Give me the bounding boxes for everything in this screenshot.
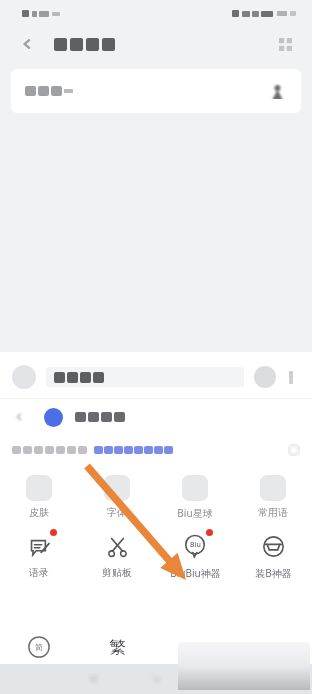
staticText: 皮肤 [29, 506, 49, 519]
button[interactable]: 皮肤 [0, 471, 78, 527]
button[interactable]: 繁 [78, 630, 156, 664]
staticText: BiuBiu神器 [170, 566, 221, 580]
button[interactable]: Recent apps [208, 664, 312, 694]
button[interactable]: Keyboard menu [12, 365, 36, 389]
button[interactable] [46, 367, 244, 387]
button[interactable]: 剪贴板 [78, 527, 156, 587]
staticText: 剪贴板 [102, 566, 132, 579]
staticText: Biu [190, 540, 201, 550]
staticText: 简 [35, 642, 43, 652]
button[interactable]: Back [14, 31, 40, 57]
button[interactable]: 语录 [0, 527, 78, 587]
staticText: 语录 [29, 566, 49, 579]
button[interactable]: Close hint [288, 444, 300, 456]
staticText: 常用语 [258, 506, 288, 519]
button[interactable]: 字体 [78, 471, 156, 527]
staticText: 字体 [107, 506, 127, 519]
button[interactable]: 简 [0, 630, 78, 664]
button[interactable]: 装B神器 [234, 527, 312, 587]
button[interactable]: Biu星球 [156, 471, 234, 527]
button[interactable] [11, 69, 301, 113]
staticText: Biu星球 [177, 506, 213, 520]
button[interactable]: Home [104, 664, 208, 694]
staticText: 繁 [109, 637, 126, 658]
button[interactable]: More options [272, 31, 298, 57]
button[interactable]: Emoji [254, 366, 276, 388]
button[interactable]: More [284, 370, 298, 384]
button[interactable]: Previous [14, 412, 24, 422]
button[interactable]: Biu [156, 527, 234, 587]
staticText: 装B神器 [255, 566, 292, 580]
button[interactable]: 常用语 [234, 471, 312, 527]
